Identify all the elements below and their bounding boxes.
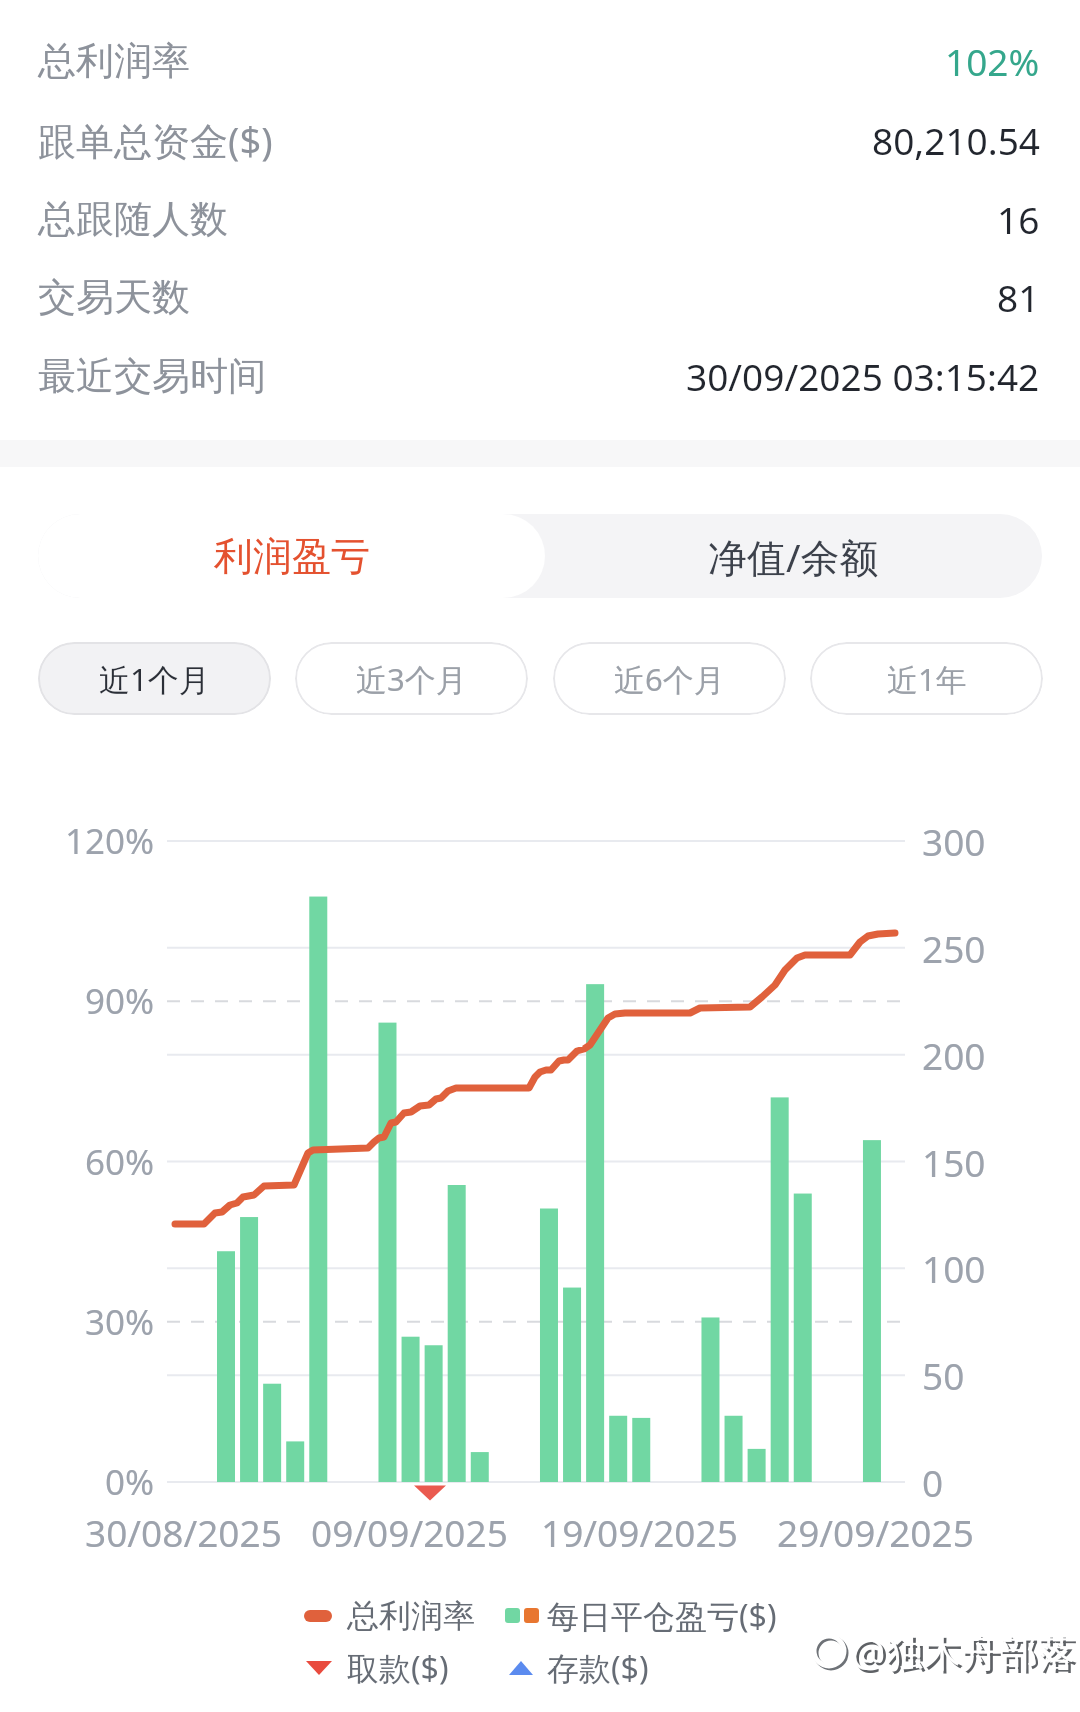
staticText: 19/09/2025	[541, 1507, 738, 1557]
staticText: 300	[922, 816, 986, 866]
staticText: 60%	[85, 1138, 155, 1186]
staticText: 净值/余额	[708, 530, 879, 583]
button[interactable]: 净值/余额	[545, 514, 1042, 598]
staticText: 90%	[85, 977, 155, 1025]
staticText: 最近交易时间	[38, 352, 266, 400]
staticText: 每日平仓盈亏($)	[547, 1594, 777, 1638]
button[interactable]: 近1年	[810, 642, 1043, 715]
staticText: 30%	[85, 1298, 155, 1346]
staticText: 250	[922, 923, 986, 973]
staticText: 近1年	[887, 658, 967, 700]
staticText: @独木舟部落	[854, 1628, 1079, 1680]
staticText: 总跟随人数	[38, 195, 228, 243]
staticText: 交易天数	[38, 273, 190, 321]
staticText: 0	[922, 1457, 944, 1507]
staticText: 30/09/2025 03:15:42	[686, 351, 1040, 401]
staticText: 总利润率	[347, 1596, 475, 1636]
staticText: 102%	[945, 36, 1040, 86]
staticText: 50	[922, 1350, 965, 1400]
staticText: 近1个月	[99, 658, 210, 700]
staticText: 0%	[105, 1458, 155, 1506]
staticText: 30/08/2025	[85, 1507, 282, 1557]
staticText: 利润盈亏	[214, 532, 370, 581]
staticText: 80,210.54	[872, 115, 1040, 165]
staticText: 200	[922, 1030, 986, 1080]
button[interactable]: 利润盈亏	[38, 514, 545, 598]
staticText: 近6个月	[614, 658, 725, 700]
staticText: 总利润率	[38, 37, 190, 85]
staticText: 150	[922, 1137, 986, 1187]
staticText: 81	[997, 272, 1040, 322]
button[interactable]: 近1个月	[38, 642, 271, 715]
staticText: 存款($)	[547, 1646, 649, 1690]
staticText: 近3个月	[356, 658, 467, 700]
button[interactable]: 近6个月	[553, 642, 786, 715]
staticText: 跟单总资金($)	[38, 114, 273, 166]
button[interactable]: 近3个月	[295, 642, 528, 715]
staticText: 16	[997, 194, 1040, 244]
staticText: 取款($)	[347, 1646, 449, 1690]
staticText: 09/09/2025	[311, 1507, 508, 1557]
staticText: 29/09/2025	[777, 1507, 974, 1557]
staticText: 100	[922, 1243, 986, 1293]
staticText: @独木舟部落	[851, 1625, 1076, 1677]
staticText: 120%	[65, 817, 155, 865]
